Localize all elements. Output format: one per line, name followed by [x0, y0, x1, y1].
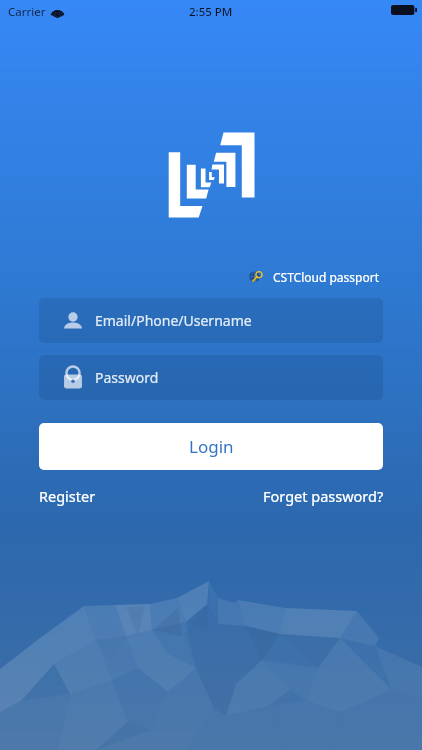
button[interactable]: Password	[39, 355, 383, 400]
button[interactable]: CSTCloud passport	[246, 266, 381, 287]
button[interactable]: Login	[39, 423, 383, 470]
staticText: CSTCloud passport	[273, 269, 379, 285]
button[interactable]: Forget password?	[263, 484, 384, 508]
staticText: Password	[95, 368, 159, 387]
staticText: Login	[189, 435, 234, 458]
button[interactable]: Email/Phone/Username	[39, 298, 383, 343]
staticText: 2:55 PM	[189, 4, 233, 20]
button[interactable]: Register	[39, 484, 96, 508]
staticText: Carrier	[8, 4, 46, 20]
staticText: Email/Phone/Username	[95, 311, 252, 330]
